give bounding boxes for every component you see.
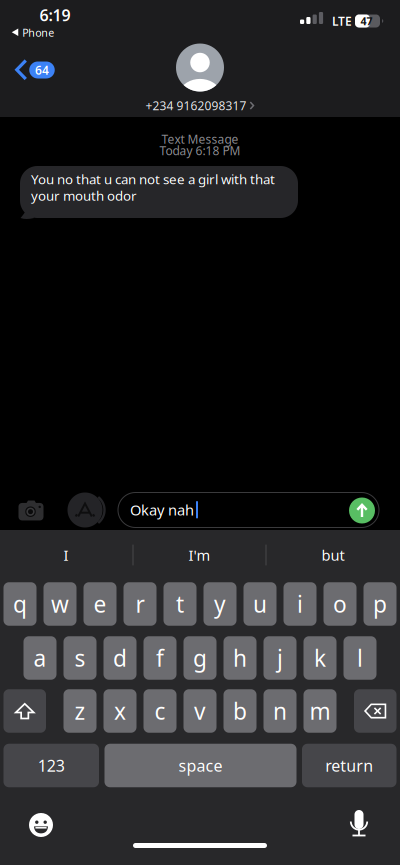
staticText: c — [154, 696, 165, 726]
button[interactable]: return — [302, 744, 396, 787]
button[interactable]: Contact details — [145, 43, 254, 113]
staticText: j — [277, 643, 283, 673]
button[interactable]: u — [243, 582, 276, 626]
staticText: b — [233, 696, 247, 726]
button[interactable]: Camera — [18, 499, 43, 520]
staticText: h — [233, 643, 247, 673]
staticText: r — [135, 589, 144, 619]
button[interactable]: I — [6, 540, 126, 570]
button[interactable]: b — [223, 689, 256, 733]
button[interactable]: but — [273, 540, 393, 570]
staticText: o — [333, 589, 347, 619]
staticText: d — [113, 643, 127, 673]
staticText: a — [33, 643, 46, 673]
staticText: z — [74, 696, 85, 726]
button[interactable]: z — [63, 689, 96, 733]
button[interactable]: Okay nah — [118, 492, 379, 527]
button[interactable]: iMessage apps — [67, 492, 107, 527]
button[interactable]: 123 — [3, 744, 99, 787]
staticText: k — [314, 643, 326, 673]
staticText: w — [51, 589, 69, 619]
button[interactable]: Send — [349, 497, 375, 523]
button[interactable]: a — [23, 636, 56, 680]
button[interactable]: space — [104, 744, 296, 787]
button[interactable]: e — [83, 582, 116, 626]
button[interactable]: x — [103, 689, 136, 733]
staticText: 64 — [35, 62, 49, 78]
staticText: Today 6:18 PM — [159, 142, 240, 158]
button[interactable]: m — [303, 689, 336, 733]
button[interactable]: q — [3, 582, 36, 626]
staticText: u — [253, 589, 267, 619]
staticText: x — [114, 696, 126, 726]
button[interactable]: k — [303, 636, 336, 680]
staticText: p — [373, 589, 387, 619]
staticText: Okay nah — [130, 500, 194, 519]
button[interactable]: v — [183, 689, 216, 733]
button[interactable]: c — [143, 689, 176, 733]
staticText: t — [176, 589, 184, 619]
button[interactable]: r — [123, 582, 156, 626]
staticText: g — [193, 643, 207, 673]
staticText: l — [357, 643, 363, 673]
staticText: 47 — [360, 14, 372, 28]
staticText: Text Message — [161, 131, 238, 147]
staticText: return — [325, 755, 373, 776]
button[interactable]: y — [203, 582, 236, 626]
button[interactable]: p — [363, 582, 396, 626]
staticText: I — [63, 545, 68, 565]
button[interactable]: I'm — [139, 540, 259, 570]
staticText: I'm — [188, 545, 210, 565]
staticText: your mouth odor — [31, 187, 137, 204]
staticText: q — [13, 589, 27, 619]
staticText: f — [156, 643, 164, 673]
staticText: v — [194, 696, 206, 726]
staticText: space — [178, 755, 222, 776]
button[interactable]: Shift — [3, 689, 46, 733]
staticText: y — [214, 589, 226, 619]
button[interactable]: g — [183, 636, 216, 680]
button[interactable]: Dictation — [349, 810, 368, 836]
button[interactable]: s — [63, 636, 96, 680]
button[interactable]: Emoji — [29, 813, 53, 837]
staticText: s — [74, 643, 85, 673]
button[interactable]: Back to messages list — [15, 59, 55, 81]
staticText: m — [309, 696, 330, 726]
button[interactable]: i — [283, 582, 316, 626]
button[interactable]: h — [223, 636, 256, 680]
button[interactable]: f — [143, 636, 176, 680]
button[interactable]: w — [43, 582, 76, 626]
staticText: 6:19 — [39, 4, 70, 26]
button[interactable]: d — [103, 636, 136, 680]
staticText: but — [321, 545, 344, 565]
button[interactable]: n — [263, 689, 296, 733]
button[interactable]: Delete — [354, 689, 396, 733]
staticText: e — [93, 589, 106, 619]
button[interactable]: Back to Phone — [12, 25, 54, 40]
button[interactable]: t — [163, 582, 196, 626]
staticText: LTE — [332, 13, 352, 29]
staticText: 123 — [38, 755, 65, 776]
staticText: i — [297, 589, 303, 619]
button[interactable]: o — [323, 582, 356, 626]
button[interactable]: l — [343, 636, 376, 680]
staticText: +234 9162098317 — [145, 97, 246, 113]
staticText: n — [273, 696, 287, 726]
staticText: You no that u can not see a girl with th… — [31, 170, 275, 188]
button[interactable]: j — [263, 636, 296, 680]
staticText: Phone — [22, 25, 54, 40]
